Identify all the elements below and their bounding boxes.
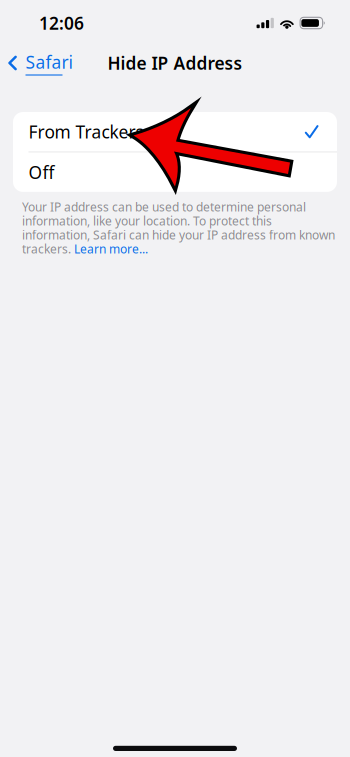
button[interactable]: Off [13,152,337,192]
staticText: From Trackers [28,120,143,143]
staticText: Learn more... [74,241,148,257]
staticText: information, Safari can hide your IP add… [22,227,335,243]
button[interactable]: Safari [0,48,72,77]
button[interactable]: From Trackers [13,112,337,151]
staticText: Safari [25,50,72,73]
staticText: 12:06 [39,11,84,34]
staticText: trackers. [22,241,74,257]
staticText: Your IP address can be used to determine… [22,199,306,215]
button[interactable]: Learn more... [74,241,148,257]
staticText: information, like your location. To prot… [22,213,272,229]
staticText: Off [28,161,54,184]
staticText: Hide IP Address [107,51,242,74]
